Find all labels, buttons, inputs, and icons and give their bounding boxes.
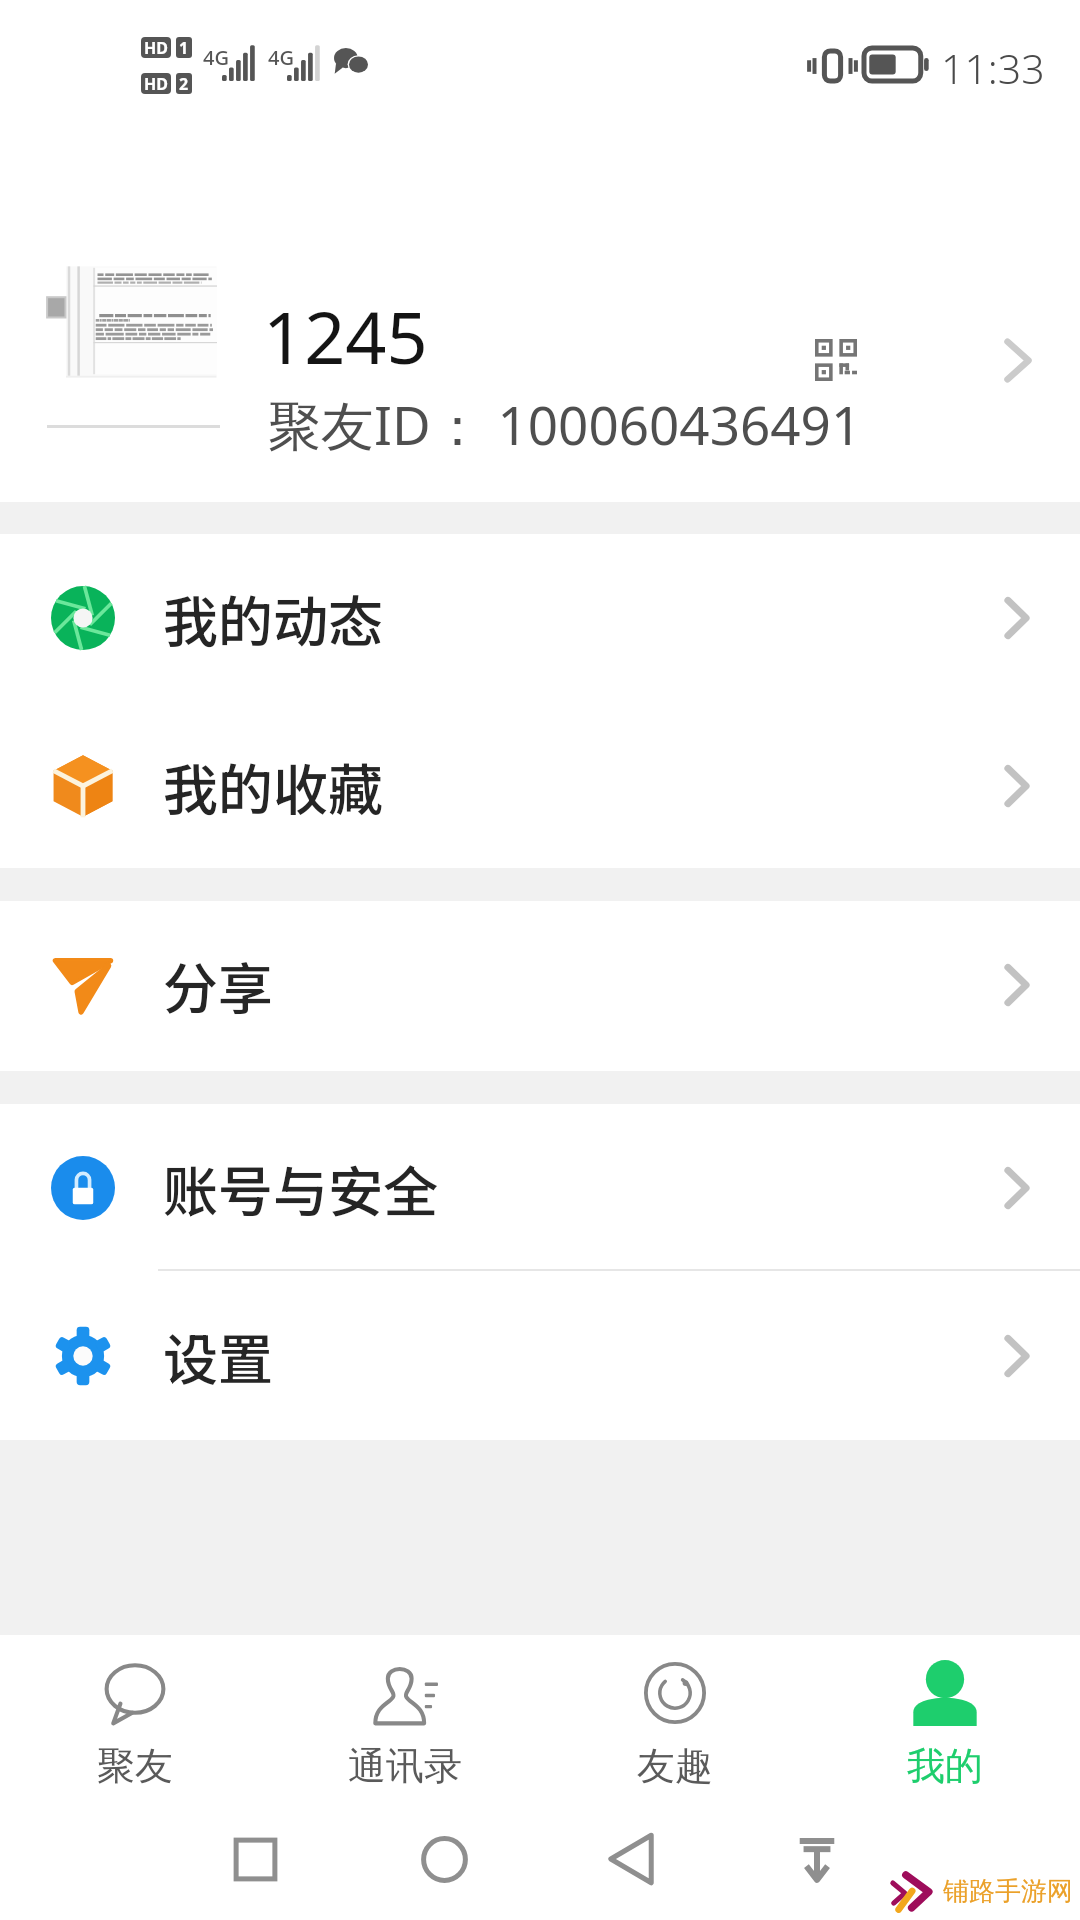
button[interactable]: Back (608, 1832, 655, 1886)
button[interactable]: 设置 (0, 1272, 1080, 1440)
button[interactable]: 我的 (810, 1635, 1080, 1800)
staticText: 我的 (907, 1742, 983, 1790)
button[interactable]: Recents (230, 1834, 281, 1885)
staticText: 友趣 (637, 1742, 713, 1790)
button[interactable]: QR code (815, 339, 857, 381)
staticText: 2 (179, 73, 189, 94)
button[interactable]: 友趣 (540, 1635, 810, 1800)
staticText: 通讯录 (348, 1742, 462, 1790)
staticText: 我的收藏 (163, 746, 384, 826)
button[interactable]: Hide keyboard (793, 1831, 841, 1886)
staticText: 铺路手游网 (943, 1875, 1073, 1908)
staticText: HD (144, 37, 168, 58)
staticText: 设置 (163, 1316, 274, 1396)
button[interactable]: 聚友 (0, 1635, 270, 1800)
staticText: 分享 (163, 945, 274, 1025)
button[interactable]: 我的收藏 (0, 702, 1080, 870)
staticText: 4G (268, 44, 294, 71)
staticText: 聚友ID： 100060436491 (268, 388, 862, 460)
staticText: 1 (179, 37, 189, 58)
staticText: 账号与安全 (163, 1148, 439, 1228)
button[interactable]: 1245 (0, 210, 1080, 500)
staticText: 1245 (263, 287, 428, 385)
button[interactable]: 我的动态 (0, 534, 1080, 702)
button[interactable]: 分享 (0, 901, 1080, 1069)
button[interactable]: Profile details (990, 320, 1046, 400)
staticText: 4G (203, 44, 229, 71)
staticText: 我的动态 (163, 578, 384, 658)
button[interactable]: 账号与安全 (0, 1104, 1080, 1272)
button[interactable]: 通讯录 (270, 1635, 540, 1800)
staticText: HD (144, 73, 168, 94)
button[interactable]: Home (417, 1832, 472, 1887)
staticText: 聚友 (97, 1742, 173, 1790)
staticText: 11:33 (941, 40, 1045, 96)
